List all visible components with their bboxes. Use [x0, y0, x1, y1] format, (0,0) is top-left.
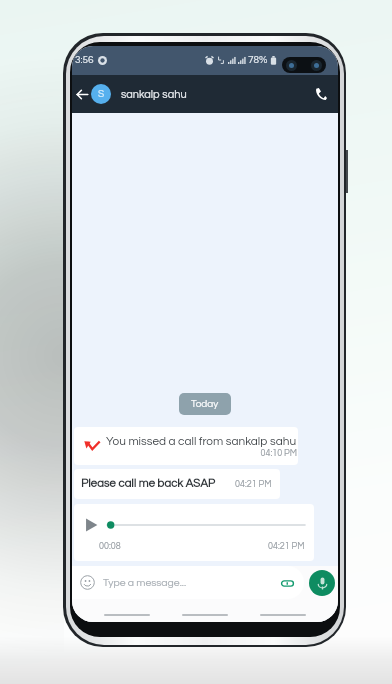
- staticText: 04:10 PM: [260, 449, 297, 458]
- staticText: Today: [191, 399, 219, 409]
- staticText: 00:08: [99, 542, 121, 551]
- staticText: 04:21 PM: [268, 542, 305, 551]
- staticText: sankalp sahu: [121, 89, 187, 100]
- button[interactable]: S: [91, 84, 111, 104]
- button[interactable]: Back: [73, 85, 91, 103]
- staticText: S: [98, 89, 105, 99]
- button[interactable]: Call: [311, 84, 331, 104]
- button[interactable]: Type a message...: [72, 566, 304, 599]
- staticText: 3:56: [75, 55, 94, 65]
- button[interactable]: You missed a call from sankalp sahu: [74, 427, 298, 465]
- staticText: You missed a call from sankalp sahu: [106, 435, 297, 447]
- button[interactable]: Play voice message: [83, 516, 100, 533]
- button[interactable]: Play voice message: [74, 504, 314, 561]
- staticText: 78%: [248, 55, 268, 65]
- button[interactable]: Record voice message: [309, 570, 335, 596]
- staticText: 04:21 PM: [235, 480, 272, 489]
- staticText: Type a message...: [103, 577, 187, 588]
- button[interactable]: Today: [179, 393, 231, 415]
- button[interactable]: Attach file: [280, 576, 294, 590]
- staticText: Please call me back ASAP: [81, 478, 216, 490]
- button[interactable]: Please call me back ASAP: [74, 469, 280, 499]
